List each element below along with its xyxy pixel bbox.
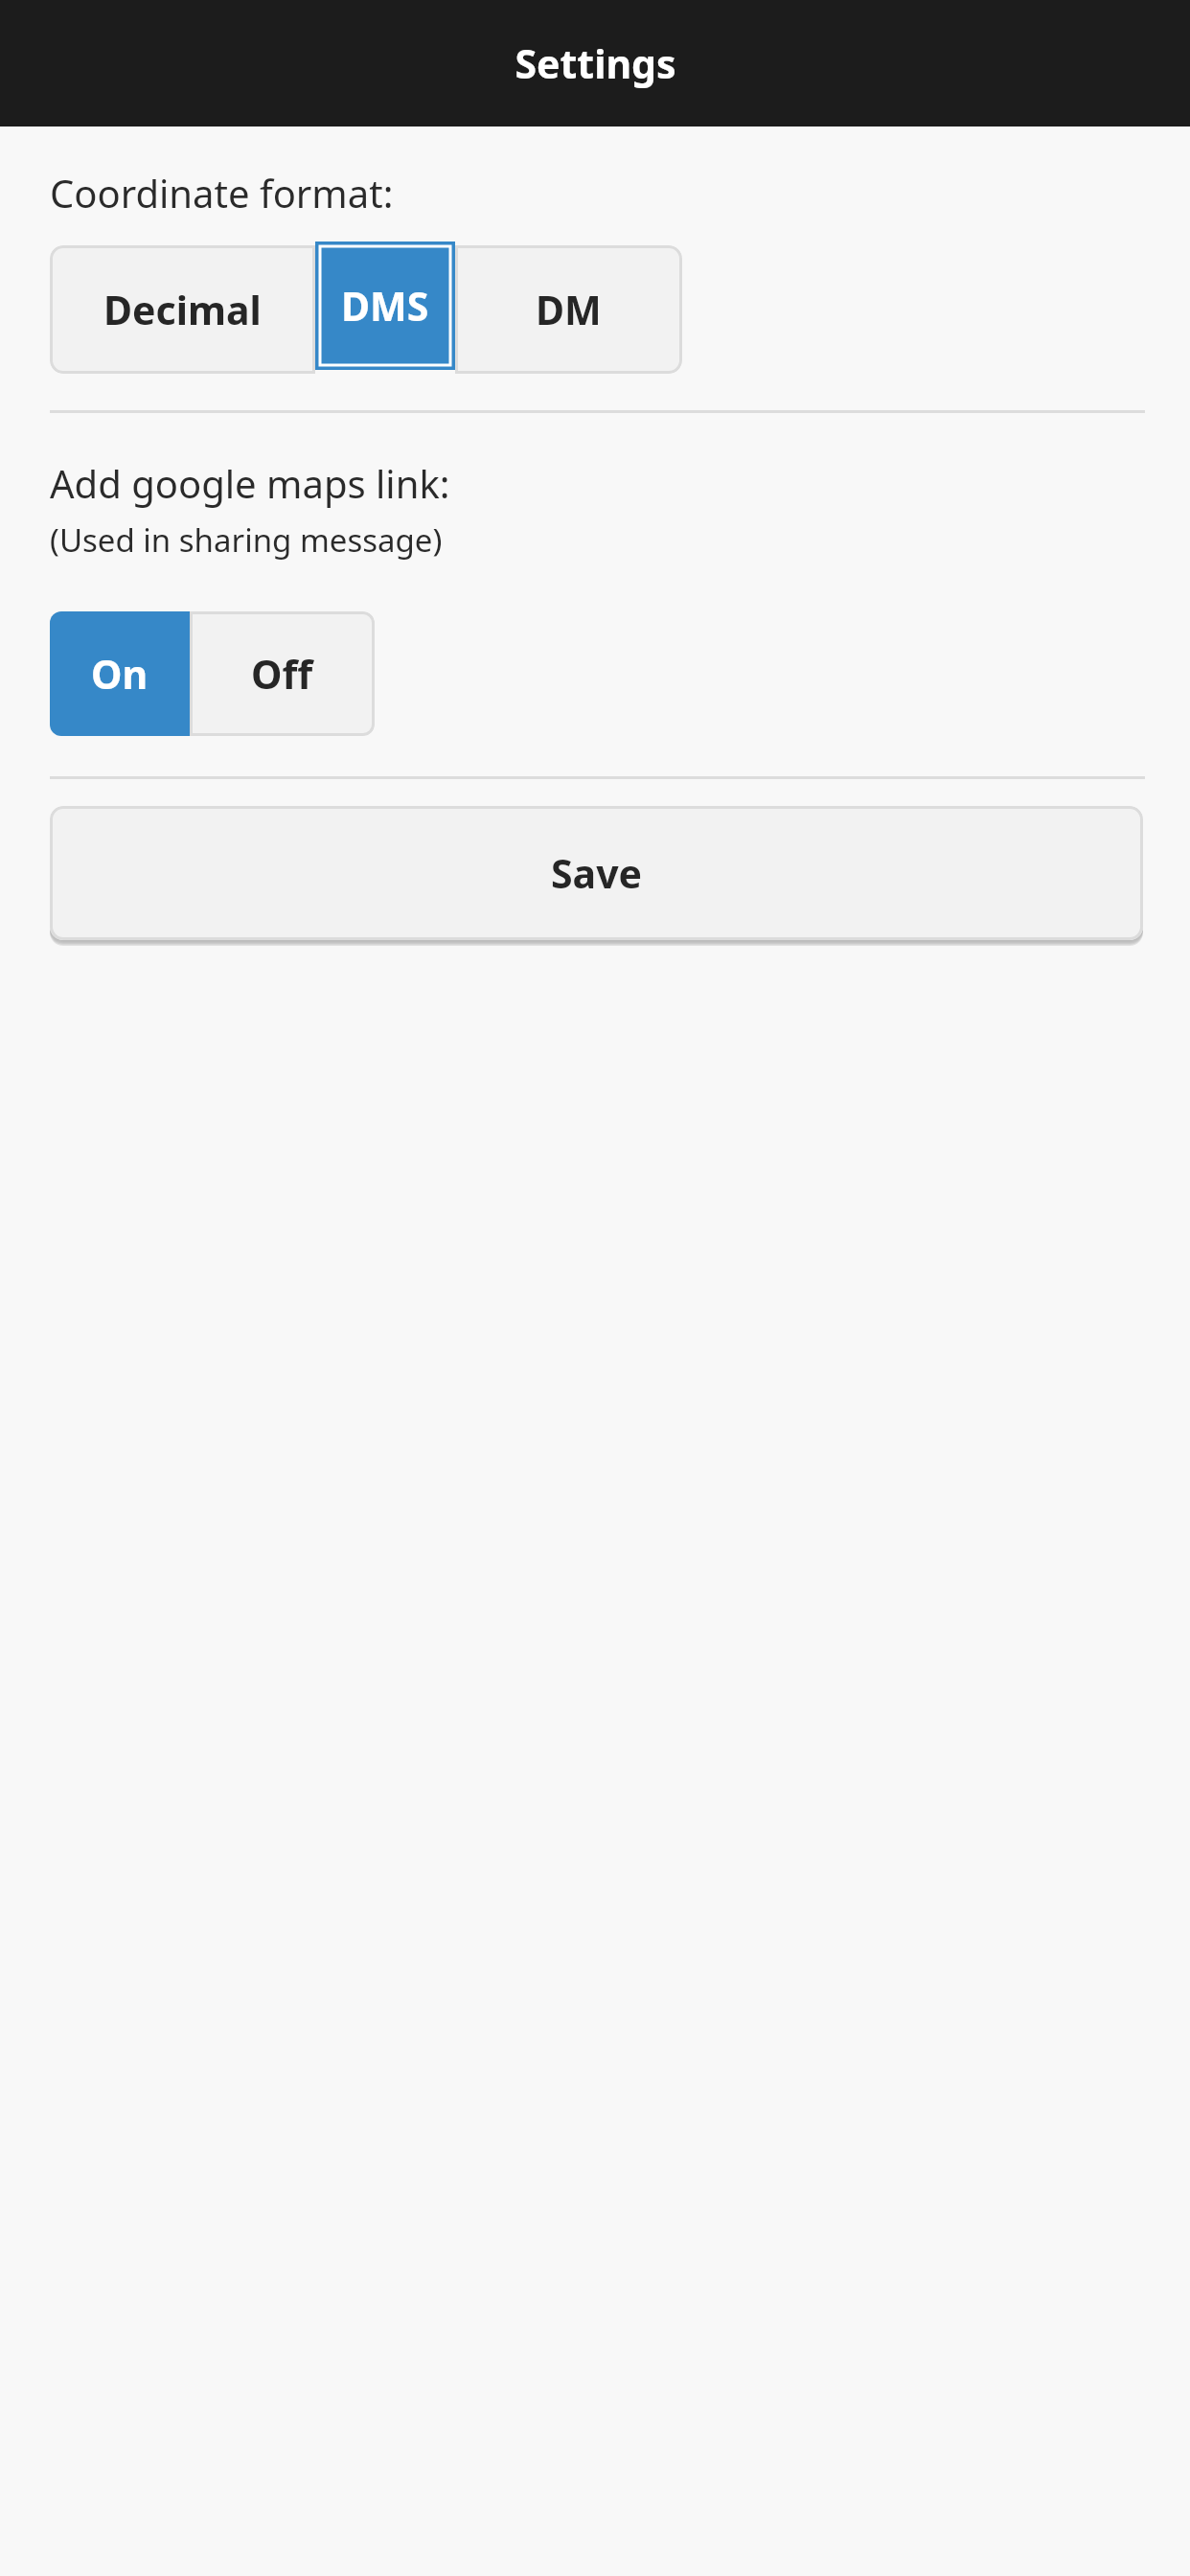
staticText: On xyxy=(91,647,149,701)
staticText: Save xyxy=(551,846,643,900)
staticText: Settings xyxy=(515,36,676,90)
staticText: Decimal xyxy=(103,283,262,336)
staticText: (Used in sharing message) xyxy=(50,518,443,562)
staticText: DM xyxy=(536,283,602,336)
staticText: Off xyxy=(251,647,313,701)
button[interactable]: Decimal xyxy=(50,245,315,374)
staticText: DMS xyxy=(341,279,429,333)
button[interactable]: DM xyxy=(455,245,682,374)
staticText: Add google maps link: xyxy=(50,457,450,509)
staticText: Coordinate format: xyxy=(50,167,394,218)
button[interactable]: Save xyxy=(50,806,1143,940)
button[interactable]: DMS xyxy=(315,241,455,370)
button[interactable]: On xyxy=(50,611,190,736)
button[interactable]: Off xyxy=(190,611,375,736)
